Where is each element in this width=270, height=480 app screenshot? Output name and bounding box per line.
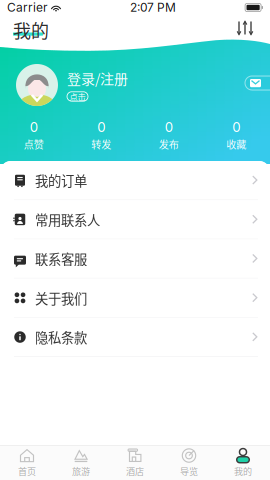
staticText: 我的: [13, 17, 49, 43]
staticText: 导览: [180, 464, 198, 478]
button[interactable]: 导览: [162, 446, 216, 480]
staticText: 联系客服: [35, 249, 87, 268]
staticText: 2:07 PM: [130, 0, 176, 15]
button[interactable]: Filter: [229, 16, 261, 40]
staticText: 收藏: [226, 137, 246, 151]
button[interactable]: 首页: [0, 446, 54, 480]
staticText: 0: [165, 119, 173, 135]
staticText: 转发: [91, 137, 111, 151]
staticText: 0: [232, 119, 240, 135]
staticText: 酒店: [126, 464, 144, 478]
staticText: 0: [97, 119, 105, 135]
staticText: 点击: [69, 90, 85, 102]
staticText: 关于我们: [35, 288, 87, 307]
button[interactable]: 我的订单: [0, 161, 270, 199]
staticText: 常用联系人: [35, 210, 100, 229]
staticText: 点赞: [24, 137, 44, 151]
button[interactable]: 隐私条款: [0, 318, 270, 356]
staticText: 0: [30, 119, 38, 135]
button[interactable]: 关于我们: [0, 279, 270, 317]
staticText: Carrier: [7, 0, 48, 15]
staticText: 我的: [234, 464, 252, 478]
staticText: 发布: [159, 137, 179, 151]
button[interactable]: 旅游: [54, 446, 108, 480]
staticText: 首页: [18, 464, 36, 478]
staticText: 旅游: [72, 464, 90, 478]
staticText: 登录/注册: [67, 68, 128, 88]
button[interactable]: 酒店: [108, 446, 162, 480]
button[interactable]: Messages: [245, 76, 270, 90]
button[interactable]: 常用联系人: [0, 200, 270, 239]
staticText: 隐私条款: [35, 327, 87, 347]
button[interactable]: 我的: [216, 446, 270, 480]
staticText: 我的订单: [35, 171, 87, 190]
button[interactable]: 联系客服: [0, 239, 270, 278]
